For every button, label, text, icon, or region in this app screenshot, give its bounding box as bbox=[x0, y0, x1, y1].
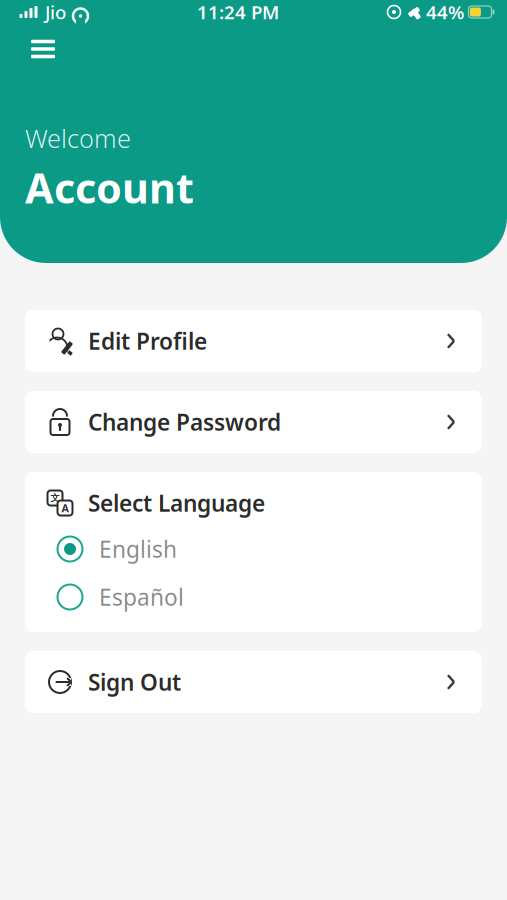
button[interactable]: Menu bbox=[23, 31, 63, 67]
staticText: Select Language bbox=[88, 488, 265, 518]
staticText: English bbox=[99, 534, 177, 564]
button[interactable]: Sign Out bbox=[25, 651, 482, 713]
staticText: A bbox=[61, 501, 68, 515]
button[interactable]: English bbox=[25, 536, 482, 562]
button[interactable]: Edit Profile bbox=[25, 310, 482, 372]
staticText: 11:24 PM bbox=[197, 0, 279, 24]
staticText: 文 bbox=[50, 492, 59, 504]
staticText: Welcome bbox=[25, 121, 131, 155]
staticText: Change Password bbox=[88, 407, 281, 437]
staticText: Edit Profile bbox=[88, 326, 207, 356]
staticText: Sign Out bbox=[88, 667, 181, 697]
button[interactable]: Change Password bbox=[25, 391, 482, 453]
staticText: Account bbox=[25, 160, 194, 215]
staticText: Español bbox=[99, 582, 184, 612]
button[interactable]: Español bbox=[25, 584, 482, 610]
staticText: Jio bbox=[45, 0, 66, 24]
staticText: 44% bbox=[426, 0, 464, 24]
